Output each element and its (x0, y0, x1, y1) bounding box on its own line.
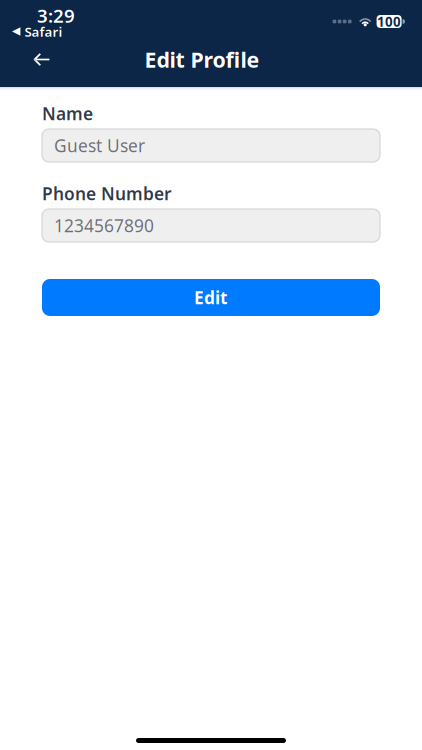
button[interactable]: Edit (42, 279, 380, 316)
button[interactable]: 1234567890 (42, 209, 380, 242)
staticText: 3:29 (37, 3, 75, 28)
button[interactable]: Back (0, 48, 68, 83)
staticText: Guest User (54, 134, 145, 157)
staticText: 1234567890 (54, 214, 154, 237)
button[interactable]: Guest User (42, 129, 380, 162)
staticText: Safari (24, 23, 62, 40)
staticText: Edit Profile (144, 45, 259, 74)
staticText: Phone Number (42, 182, 172, 205)
staticText: 100 (377, 13, 401, 30)
staticText: Name (42, 102, 93, 125)
staticText: Edit (194, 286, 228, 309)
